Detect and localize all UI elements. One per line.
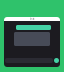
staticText: chat — [29, 17, 34, 21]
